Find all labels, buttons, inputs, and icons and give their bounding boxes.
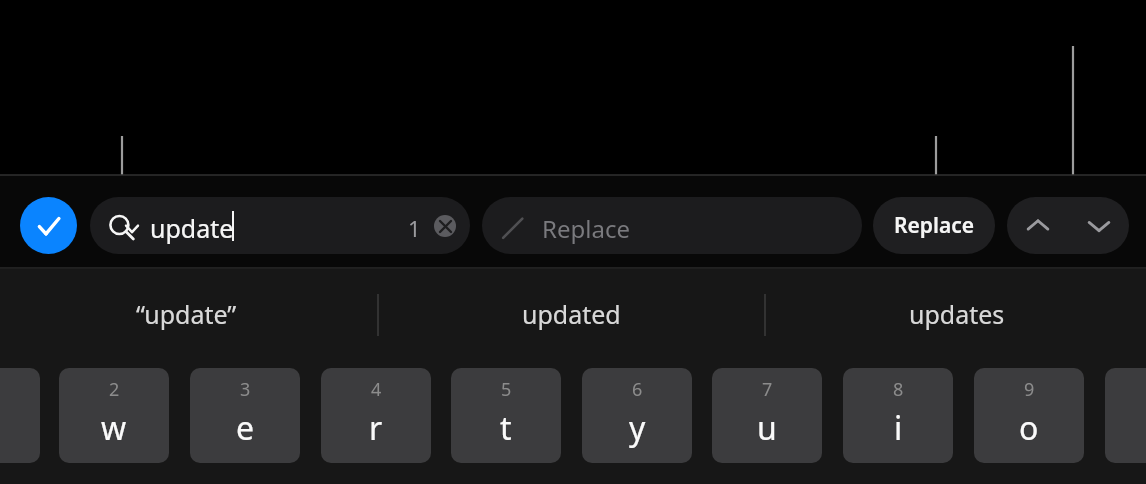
button[interactable]: 6 xyxy=(582,368,692,463)
staticText: 1 xyxy=(408,213,421,243)
button[interactable]: 8 xyxy=(843,368,953,463)
staticText: o xyxy=(1019,406,1039,450)
button[interactable]: Done xyxy=(20,197,77,254)
staticText: r xyxy=(369,406,383,450)
staticText: i xyxy=(894,406,903,450)
staticText: e xyxy=(236,406,255,450)
staticText: updated xyxy=(522,297,621,331)
button[interactable]: Previous match xyxy=(1007,197,1068,254)
staticText: 7 xyxy=(762,377,773,402)
staticText: 9 xyxy=(1024,377,1035,402)
staticText: 5 xyxy=(501,377,512,402)
button[interactable]: updates xyxy=(827,278,1087,350)
staticText: w xyxy=(101,406,127,450)
button[interactable] xyxy=(0,368,40,463)
staticText: t xyxy=(500,406,512,450)
button[interactable]: update xyxy=(90,197,470,254)
staticText: 6 xyxy=(632,377,643,402)
button[interactable]: 5 xyxy=(451,368,561,463)
staticText: “update” xyxy=(136,297,237,331)
staticText: Replace xyxy=(542,212,630,245)
staticText: y xyxy=(629,406,646,450)
staticText: 8 xyxy=(893,377,904,402)
button[interactable]: updated xyxy=(441,278,701,350)
button[interactable]: Replace xyxy=(482,197,862,254)
button[interactable]: Next match xyxy=(1068,197,1129,254)
button[interactable]: 7 xyxy=(712,368,822,463)
button[interactable]: Clear search xyxy=(434,215,456,237)
button[interactable]: “update” xyxy=(56,278,316,350)
staticText: 4 xyxy=(371,377,382,402)
button[interactable]: 4 xyxy=(321,368,431,463)
staticText: 3 xyxy=(240,377,251,402)
button[interactable]: Replace xyxy=(873,197,995,254)
button[interactable]: 3 xyxy=(190,368,300,463)
button[interactable]: 2 xyxy=(59,368,169,463)
staticText: 2 xyxy=(109,377,120,402)
staticText: updates xyxy=(909,297,1005,331)
staticText: Replace xyxy=(894,211,974,240)
staticText: u xyxy=(757,406,777,450)
button[interactable]: 9 xyxy=(974,368,1084,463)
staticText: update xyxy=(150,211,234,245)
button[interactable] xyxy=(1105,368,1146,463)
